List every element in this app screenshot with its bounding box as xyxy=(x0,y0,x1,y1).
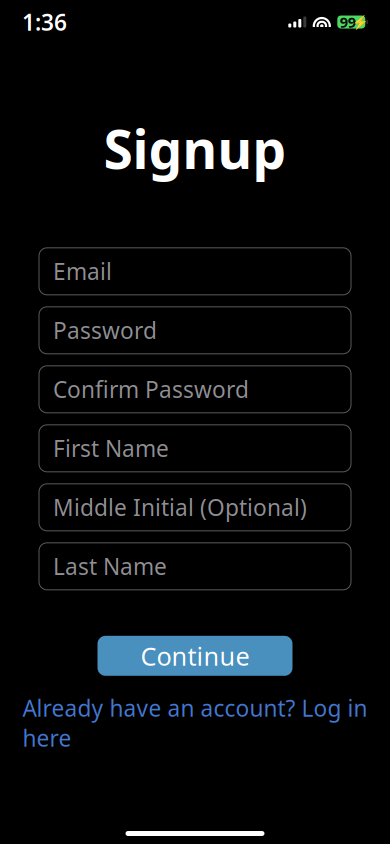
staticText: Last Name xyxy=(53,551,167,581)
button[interactable]: First Name xyxy=(39,425,351,472)
button[interactable]: Email xyxy=(39,248,351,295)
staticText: Confirm Password xyxy=(53,374,249,404)
staticText: ⚡ xyxy=(352,14,369,30)
staticText: Email xyxy=(53,256,112,286)
button[interactable]: Password xyxy=(39,307,351,354)
staticText: Continue xyxy=(140,639,249,673)
button[interactable]: Continue xyxy=(97,636,292,676)
staticText: Middle Initial (Optional) xyxy=(53,492,307,522)
button[interactable]: Confirm Password xyxy=(39,366,351,413)
staticText: Already have an account? Log in here xyxy=(22,693,367,753)
button[interactable]: Last Name xyxy=(39,543,351,590)
staticText: Signup xyxy=(103,113,286,184)
button[interactable]: Already have an account? Log in here xyxy=(12,688,377,758)
staticText: 1:36 xyxy=(22,7,67,37)
staticText: 99 xyxy=(340,12,356,32)
button[interactable]: Middle Initial (Optional) xyxy=(39,484,351,531)
staticText: Password xyxy=(53,315,157,345)
staticText: First Name xyxy=(53,433,169,463)
